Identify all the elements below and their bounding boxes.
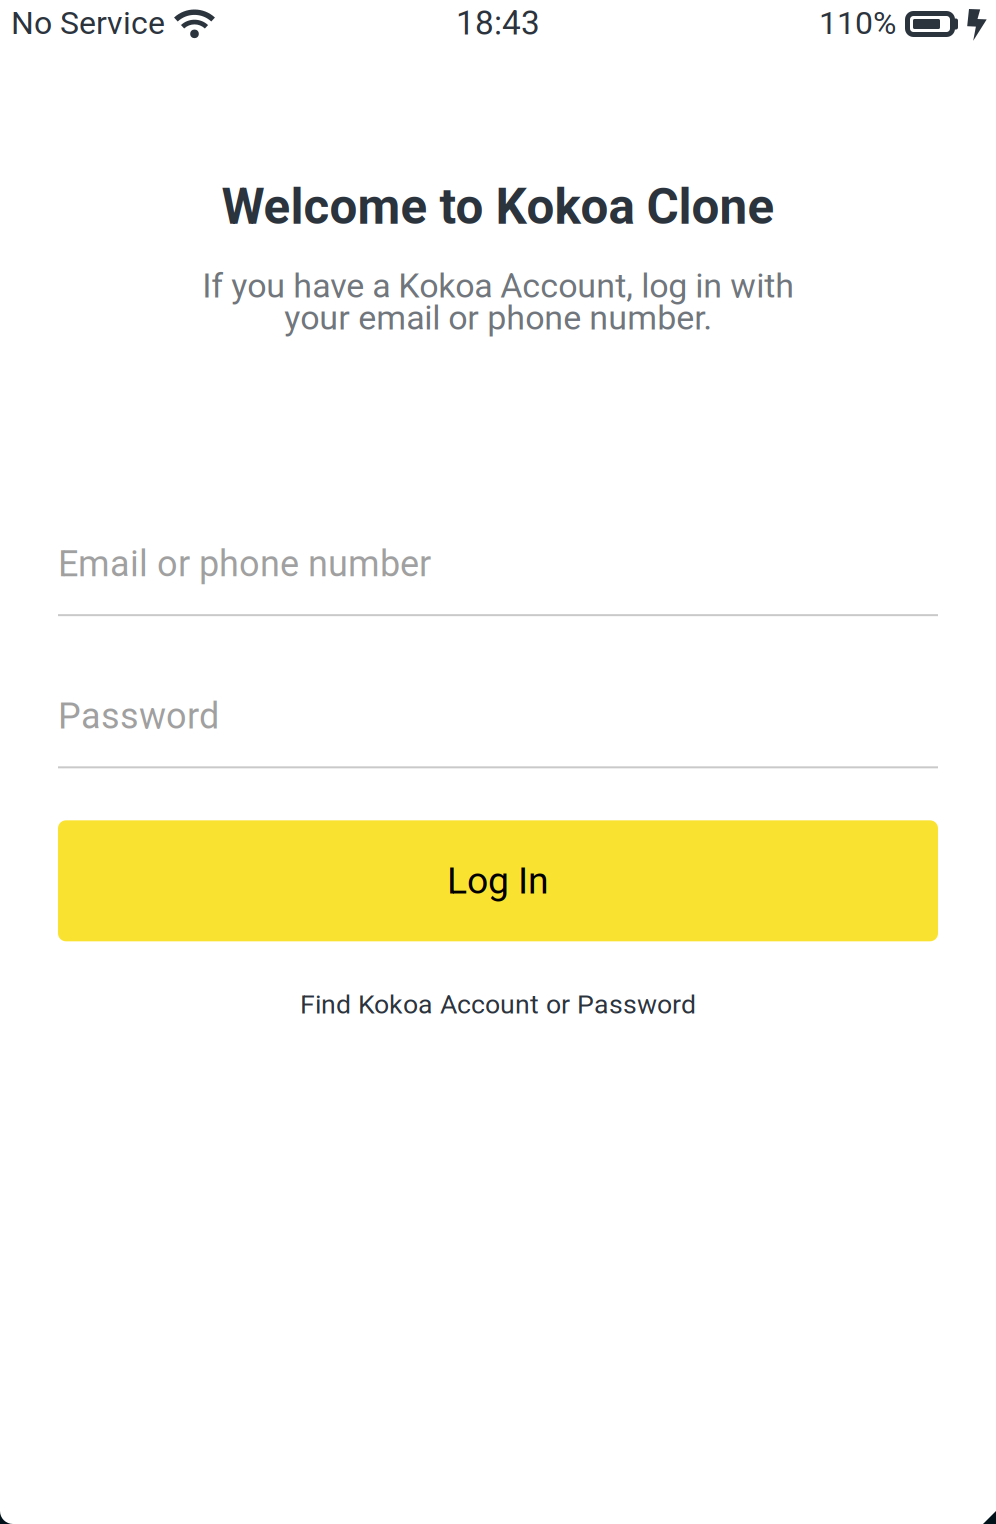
staticText: No Service (11, 4, 165, 42)
staticText: Find Kokoa Account or Password (300, 989, 696, 1020)
staticText: Log In (447, 859, 549, 903)
button[interactable]: Find Kokoa Account or Password (0, 981, 996, 1027)
staticText: Password (58, 695, 219, 737)
button[interactable]: Password (58, 695, 938, 768)
button[interactable]: Log In (58, 820, 938, 941)
staticText: 110% (819, 4, 896, 42)
staticText: Welcome to Kokoa Clone (221, 178, 774, 236)
staticText: If you have a Kokoa Account, log in with… (202, 270, 794, 334)
staticText: 18:43 (456, 3, 540, 43)
staticText: Email or phone number (58, 543, 431, 585)
button[interactable]: Email or phone number (58, 543, 938, 616)
